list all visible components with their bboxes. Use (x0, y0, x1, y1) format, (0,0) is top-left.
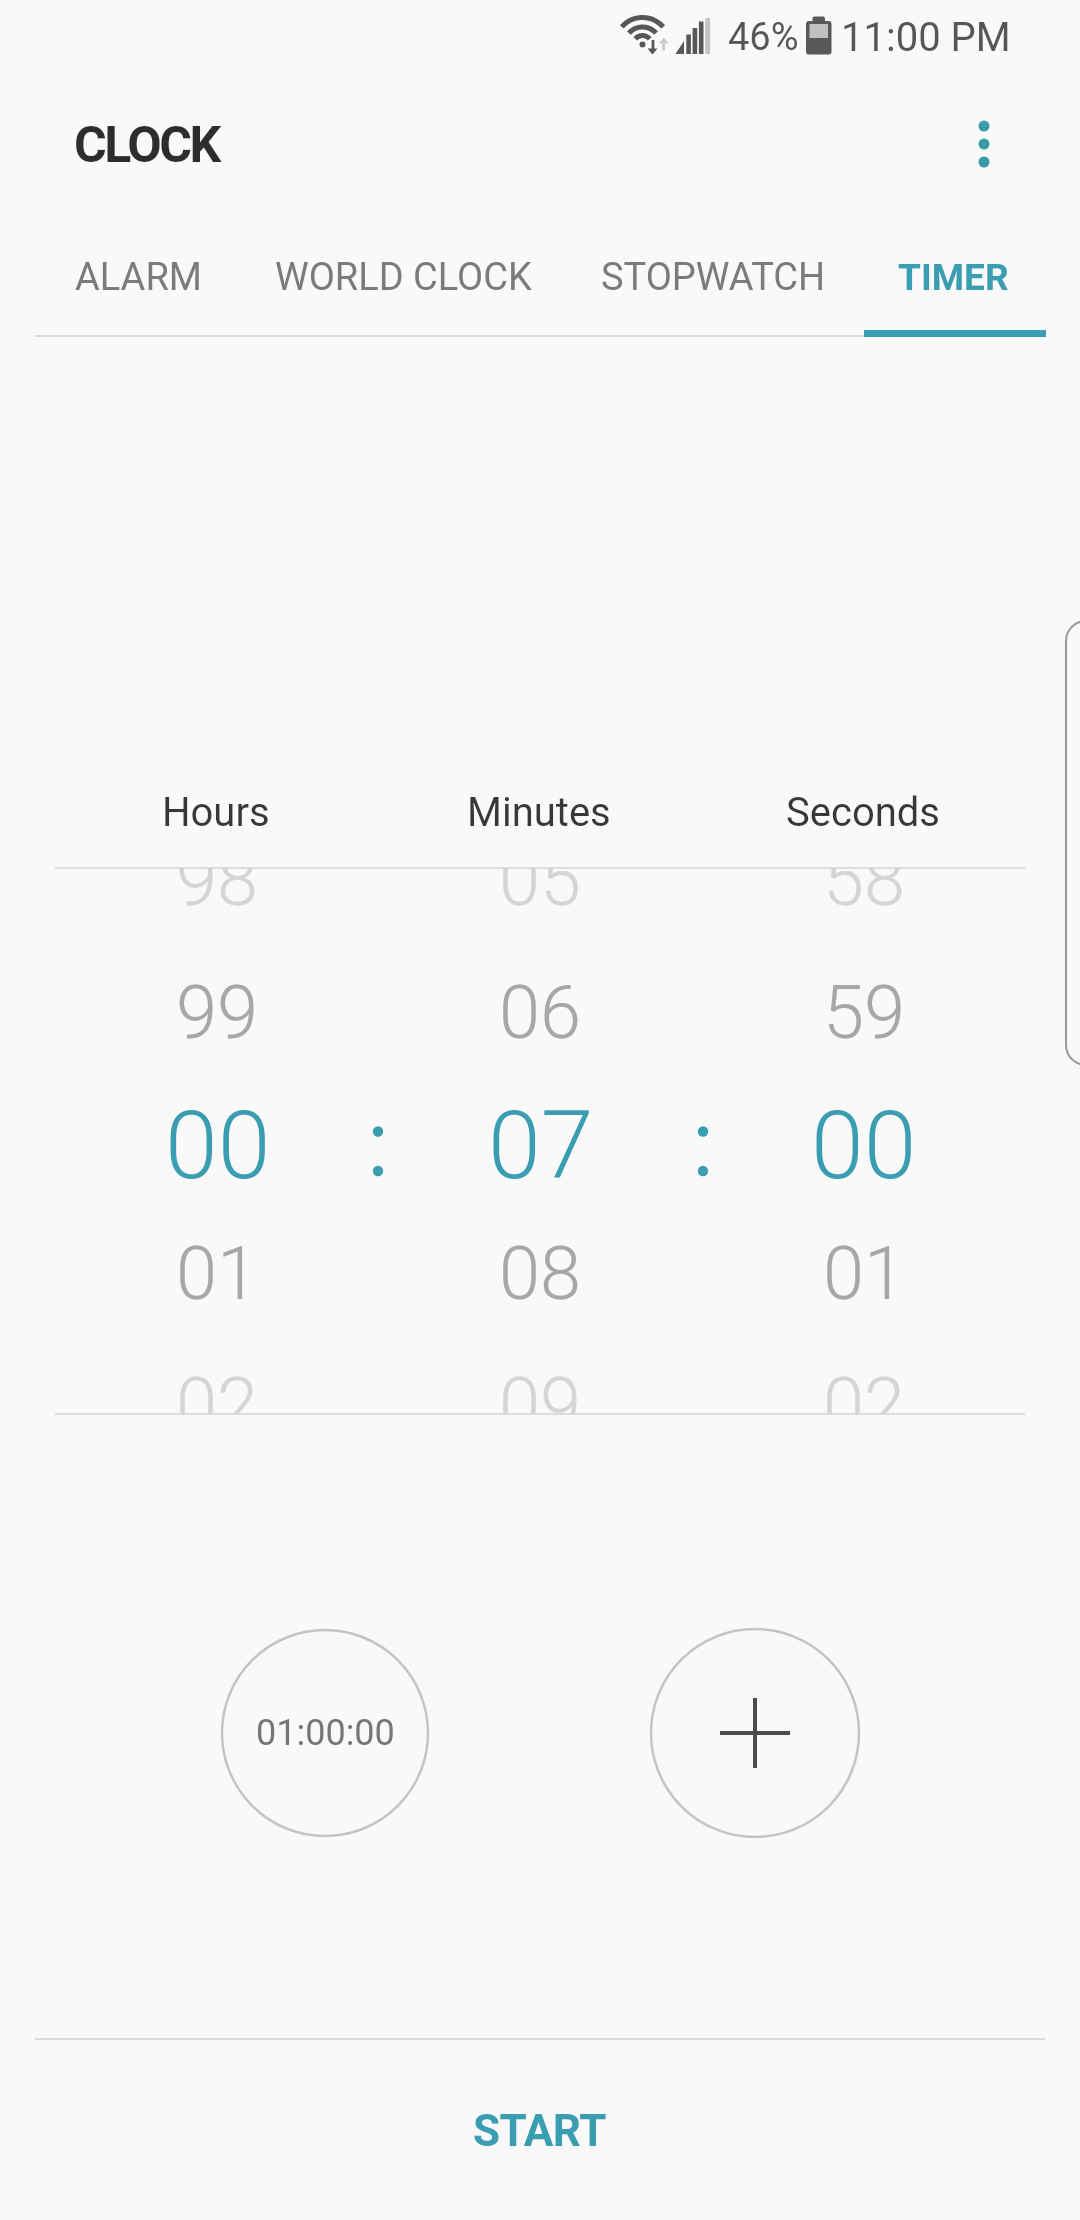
button[interactable] (944, 104, 1024, 184)
button[interactable]: START (390, 2086, 690, 2176)
staticText: Seconds (786, 789, 941, 836)
button[interactable]: WORLD CLOCK (253, 237, 553, 317)
staticText: 01 (176, 1230, 259, 1317)
button[interactable] (651, 1629, 859, 1837)
staticText: 58 (823, 868, 906, 923)
staticText: 02 (823, 1361, 906, 1414)
staticText: 02 (176, 1361, 259, 1414)
staticText: 05 (499, 868, 582, 923)
staticText: 11:00 PM (841, 14, 1011, 61)
staticText: WORLD CLOCK (275, 255, 532, 300)
staticText: STOPWATCH (601, 255, 826, 300)
staticText: 08 (499, 1230, 582, 1317)
staticText: 98 (176, 868, 259, 923)
button[interactable]: STOPWATCH (583, 237, 843, 317)
staticText: 00 (811, 1090, 917, 1201)
staticText: 06 (499, 969, 582, 1056)
staticText: 01:00:00 (256, 1712, 395, 1754)
staticText: START (473, 2105, 607, 2157)
staticText: 59 (823, 969, 906, 1056)
staticText: ALARM (75, 255, 202, 300)
staticText: CLOCK (74, 116, 219, 175)
staticText: 99 (176, 969, 259, 1056)
staticText: TIMER (898, 256, 1009, 299)
button[interactable]: ALARM (38, 237, 238, 317)
staticText: Minutes (467, 789, 611, 836)
staticText: Hours (162, 789, 270, 836)
button[interactable]: TIMER (863, 237, 1043, 317)
staticText: 09 (499, 1361, 582, 1414)
staticText: 07 (488, 1090, 594, 1201)
staticText: 46% (728, 15, 799, 60)
staticText: 01 (823, 1230, 906, 1317)
staticText: 00 (165, 1090, 271, 1201)
button[interactable]: 01:00:00 (222, 1630, 428, 1836)
